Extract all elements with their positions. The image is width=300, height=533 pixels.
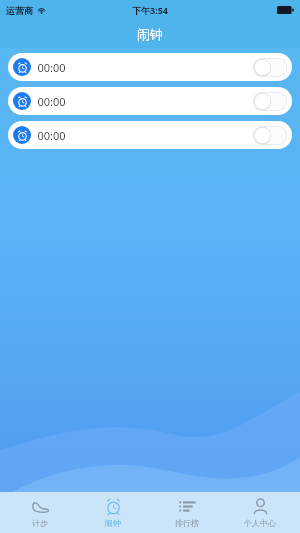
button[interactable]: 00:00 [8, 87, 292, 115]
staticText: 运营商 [6, 5, 33, 16]
button[interactable]: 排行榜 [154, 492, 220, 533]
button[interactable]: 计步 [7, 492, 73, 533]
staticText: 个人中心 [244, 518, 276, 528]
button[interactable]: 闹钟 [80, 492, 146, 533]
staticText: 排行榜 [175, 518, 199, 528]
button[interactable]: Toggle alarm [253, 126, 287, 145]
button[interactable]: 个人中心 [227, 492, 293, 533]
button[interactable]: Toggle alarm [253, 58, 287, 77]
staticText: 00:00 [37, 94, 66, 109]
staticText: 闹钟 [105, 518, 121, 528]
staticText: 计步 [32, 518, 48, 528]
staticText: 00:00 [37, 128, 66, 143]
button[interactable]: Toggle alarm [253, 92, 287, 111]
staticText: 下午3:54 [132, 4, 168, 16]
staticText: 闹钟 [137, 26, 163, 42]
button[interactable]: 00:00 [8, 121, 292, 149]
button[interactable]: 00:00 [8, 53, 292, 81]
staticText: 00:00 [37, 60, 66, 75]
